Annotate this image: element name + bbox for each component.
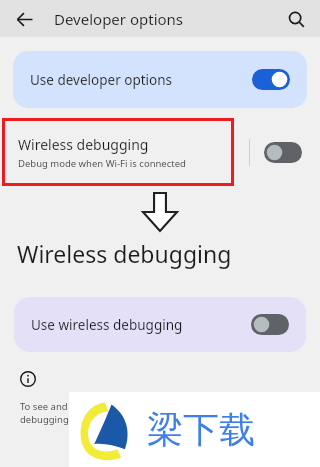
button[interactable]: Wireless debugging [2, 118, 318, 186]
staticText: Wireless debugging [18, 135, 149, 154]
button[interactable]: Toggle off [251, 314, 289, 335]
staticText: Debug mode when Wi-Fi is connected [18, 157, 186, 170]
button[interactable]: Toggle on [252, 69, 290, 90]
button[interactable]: Back [8, 3, 40, 35]
staticText: To see and use available devices, turn o… [20, 400, 240, 426]
button[interactable]: Use developer options [13, 51, 307, 108]
staticText: 梁下载 [147, 407, 255, 452]
staticText: Developer options [54, 9, 184, 29]
button[interactable]: Search [281, 4, 311, 34]
staticText: Wireless debugging [17, 238, 232, 269]
staticText: Use developer options [30, 71, 173, 89]
button[interactable]: Use wireless debugging [14, 297, 306, 352]
staticText: Use wireless debugging [31, 316, 183, 334]
button[interactable]: Toggle off [264, 142, 302, 163]
